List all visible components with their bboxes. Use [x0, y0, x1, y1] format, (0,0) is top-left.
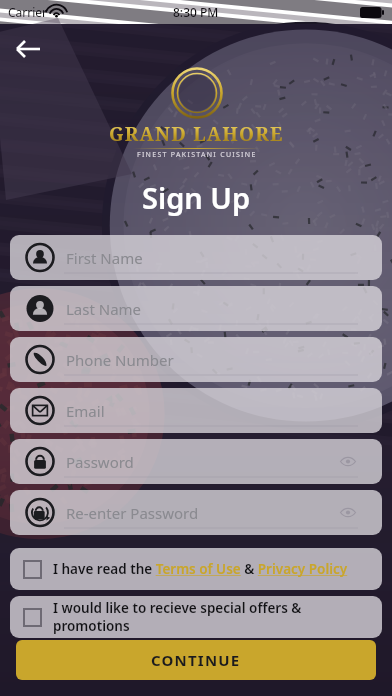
- staticText: 8:30 PM: [173, 4, 219, 20]
- staticText: Sign Up: [142, 178, 251, 217]
- button[interactable]: First Name: [10, 235, 382, 280]
- staticText: Password: [66, 452, 134, 472]
- button[interactable]: I have read the Terms of Use & Privacy P…: [10, 548, 382, 590]
- staticText: GRAND LAHORE: [109, 121, 284, 147]
- staticText: Re-enter Password: [66, 503, 199, 523]
- button[interactable]: Last Name: [10, 286, 382, 331]
- staticText: Phone Number: [66, 350, 174, 370]
- staticText: I have read the Terms of Use & Privacy P…: [53, 560, 348, 578]
- button[interactable]: Password: [10, 439, 382, 484]
- staticText: CONTINUE: [151, 650, 241, 670]
- staticText: I would like to recieve special offers &…: [53, 599, 368, 635]
- button[interactable]: Phone Number: [10, 337, 382, 382]
- button[interactable]: Back: [12, 32, 46, 66]
- staticText: Carrier: [8, 4, 48, 20]
- staticText: First Name: [66, 248, 143, 268]
- staticText: Email: [66, 401, 105, 421]
- button[interactable]: Email: [10, 388, 382, 433]
- staticText: Last Name: [66, 299, 142, 319]
- button[interactable]: Re-enter Password: [10, 490, 382, 535]
- button[interactable]: CONTINUE: [16, 640, 376, 680]
- staticText: FINEST PAKISTANI CUISINE: [137, 150, 257, 160]
- button[interactable]: I would like to recieve special offers &…: [10, 596, 382, 638]
